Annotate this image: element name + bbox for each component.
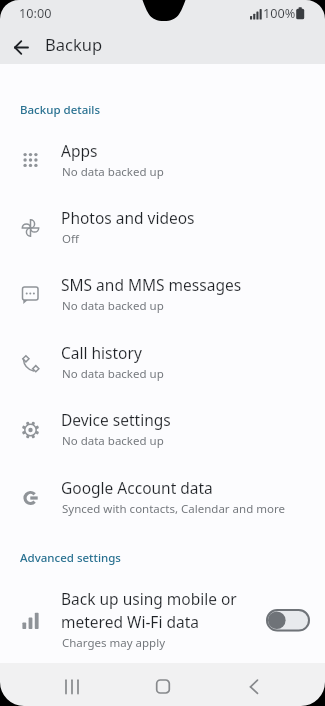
button[interactable]: Google Account data [0, 464, 325, 531]
staticText: Photos and videos [61, 207, 195, 228]
button[interactable] [6, 32, 38, 64]
staticText: Backup details [20, 102, 101, 118]
staticText: metered Wi-Fi data [61, 611, 199, 632]
staticText: Google Account data [61, 477, 213, 498]
staticText: Device settings [61, 409, 171, 430]
staticText: No data backed up [62, 164, 164, 180]
staticText: No data backed up [62, 366, 164, 382]
button[interactable]: Back up using mobile or [0, 584, 325, 646]
staticText: SMS and MMS messages [61, 274, 242, 295]
button[interactable]: Call history [0, 329, 325, 396]
staticText: Charges may apply [62, 635, 166, 651]
button[interactable] [265, 608, 310, 632]
button[interactable]: Photos and videos [0, 194, 325, 261]
button[interactable]: SMS and MMS messages [0, 261, 325, 328]
staticText: 10:00 [19, 4, 52, 21]
staticText: Advanced settings [20, 550, 121, 566]
button[interactable] [143, 667, 183, 703]
button[interactable]: Apps [0, 127, 325, 194]
button[interactable] [234, 667, 274, 703]
staticText: Call history [61, 342, 142, 363]
button[interactable]: Device settings [0, 396, 325, 463]
staticText: Synced with contacts, Calendar and more [62, 501, 285, 517]
staticText: No data backed up [62, 298, 164, 314]
staticText: Apps [61, 140, 98, 161]
staticText: 100% [263, 4, 296, 21]
staticText: Backup [45, 33, 103, 55]
staticText: Back up using mobile or [61, 588, 237, 609]
staticText: Off [62, 231, 79, 247]
staticText: No data backed up [62, 433, 164, 449]
button[interactable] [52, 667, 92, 703]
